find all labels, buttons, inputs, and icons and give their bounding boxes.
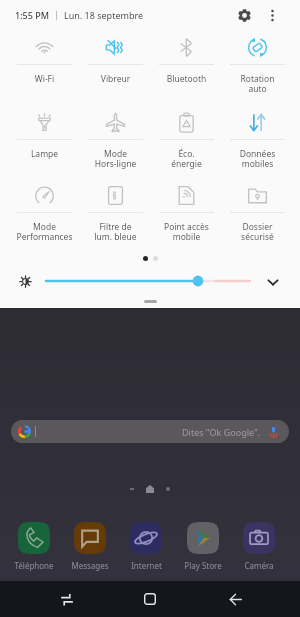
button[interactable]: Éco. énergie (151, 110, 222, 176)
button[interactable]: Bluetooth (151, 35, 222, 101)
staticText: Wi-Fi (9, 73, 80, 85)
button[interactable]: Settings (232, 3, 256, 27)
staticText: Mode Performances (9, 221, 80, 242)
button[interactable]: Play Store (175, 522, 231, 571)
button[interactable]: Lampe (9, 110, 80, 176)
button[interactable]: Caméra (231, 522, 287, 571)
button[interactable]: Filtre de lum. bleue (80, 183, 151, 249)
button[interactable]: Messages (62, 522, 118, 571)
staticText: Mode Hors-ligne (80, 148, 151, 169)
staticText: Lampe (9, 148, 80, 160)
staticText: 1:55 PM (15, 9, 49, 21)
button[interactable]: Back (218, 582, 253, 617)
staticText: Messages (71, 560, 109, 571)
button[interactable]: Mode Hors-ligne (80, 110, 151, 176)
button[interactable]: Internet (118, 522, 174, 571)
button[interactable]: More options (260, 3, 284, 27)
staticText: Éco. énergie (151, 148, 222, 169)
staticText: Données mobiles (222, 148, 293, 169)
button[interactable]: Recents (49, 582, 84, 617)
staticText: Caméra (244, 560, 274, 571)
staticText: Play Store (184, 560, 222, 571)
button[interactable]: Brightness slider (40, 271, 256, 291)
button[interactable]: Données mobiles (222, 110, 293, 176)
button[interactable]: Point accès mobile (151, 183, 222, 249)
button[interactable]: Dossier sécurisé (222, 183, 293, 249)
button[interactable]: Mode Performances (9, 183, 80, 249)
staticText: Dossier sécurisé (222, 221, 293, 242)
button[interactable]: Auto brightness (16, 272, 34, 290)
staticText: Filtre de lum. bleue (80, 221, 151, 242)
button[interactable]: Téléphone (6, 522, 62, 571)
staticText: Lun. 18 septembre (64, 9, 144, 21)
staticText: Vibreur (80, 73, 151, 85)
button[interactable]: Expand quick settings (263, 272, 283, 292)
button[interactable]: Rotation auto (222, 35, 293, 101)
staticText: Internet (131, 560, 162, 571)
staticText: Point accès mobile (151, 221, 222, 242)
button[interactable]: Search (11, 420, 289, 443)
staticText: Dites "Ok Google". (182, 426, 261, 438)
staticText: Rotation auto (222, 73, 293, 94)
button[interactable]: Home (133, 582, 167, 616)
button[interactable]: Vibreur (80, 35, 151, 101)
staticText: Bluetooth (151, 73, 222, 85)
button[interactable]: Wi-Fi (9, 35, 80, 101)
staticText: Téléphone (14, 560, 54, 571)
